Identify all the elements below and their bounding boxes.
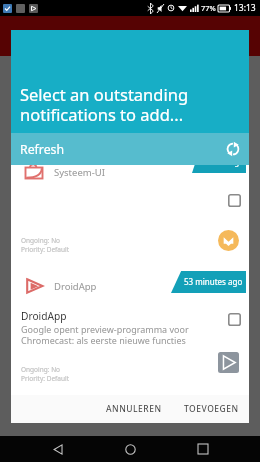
button[interactable]: TOEVOEGEN (177, 397, 246, 421)
staticText: Priority: Default (21, 374, 70, 383)
staticText: TOEVOEGEN (184, 403, 239, 415)
staticText: DroidApp (21, 309, 67, 323)
button[interactable]: Home (115, 436, 145, 462)
staticText: Google opent preview-programma voor Chro… (21, 323, 189, 347)
button[interactable]: 22 min ago (14, 165, 246, 259)
button[interactable]: Select notification (228, 313, 241, 326)
staticText: Ongoing: No (21, 236, 61, 245)
staticText: Refresh (20, 141, 65, 158)
staticText: ANNULEREN (106, 403, 162, 415)
button[interactable]: Refresh (11, 133, 249, 165)
staticText: Select an outstanding notifications to a… (20, 83, 189, 126)
staticText: 13:13 (234, 2, 256, 14)
button[interactable]: Recents (188, 436, 218, 462)
staticText: Priority: Default (21, 245, 70, 254)
staticText: DroidApp (54, 280, 97, 293)
button[interactable]: ANNULEREN (99, 397, 169, 421)
staticText: 22 min ago (202, 165, 245, 167)
button[interactable]: 53 minutes ago (14, 271, 246, 381)
button[interactable]: Select notification (228, 194, 241, 207)
staticText: 77% (201, 3, 216, 13)
staticText: 53 minutes ago (184, 276, 243, 287)
staticText: Ongoing: No (21, 365, 61, 374)
staticText: Systeem-UI (54, 166, 105, 179)
button[interactable]: Refresh (224, 140, 242, 158)
button[interactable]: Back (43, 436, 73, 462)
